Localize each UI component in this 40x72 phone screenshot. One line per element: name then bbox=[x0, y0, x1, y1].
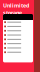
staticText: for your history bbox=[3, 16, 22, 30]
staticText: Unlimited storage bbox=[3, 2, 29, 16]
